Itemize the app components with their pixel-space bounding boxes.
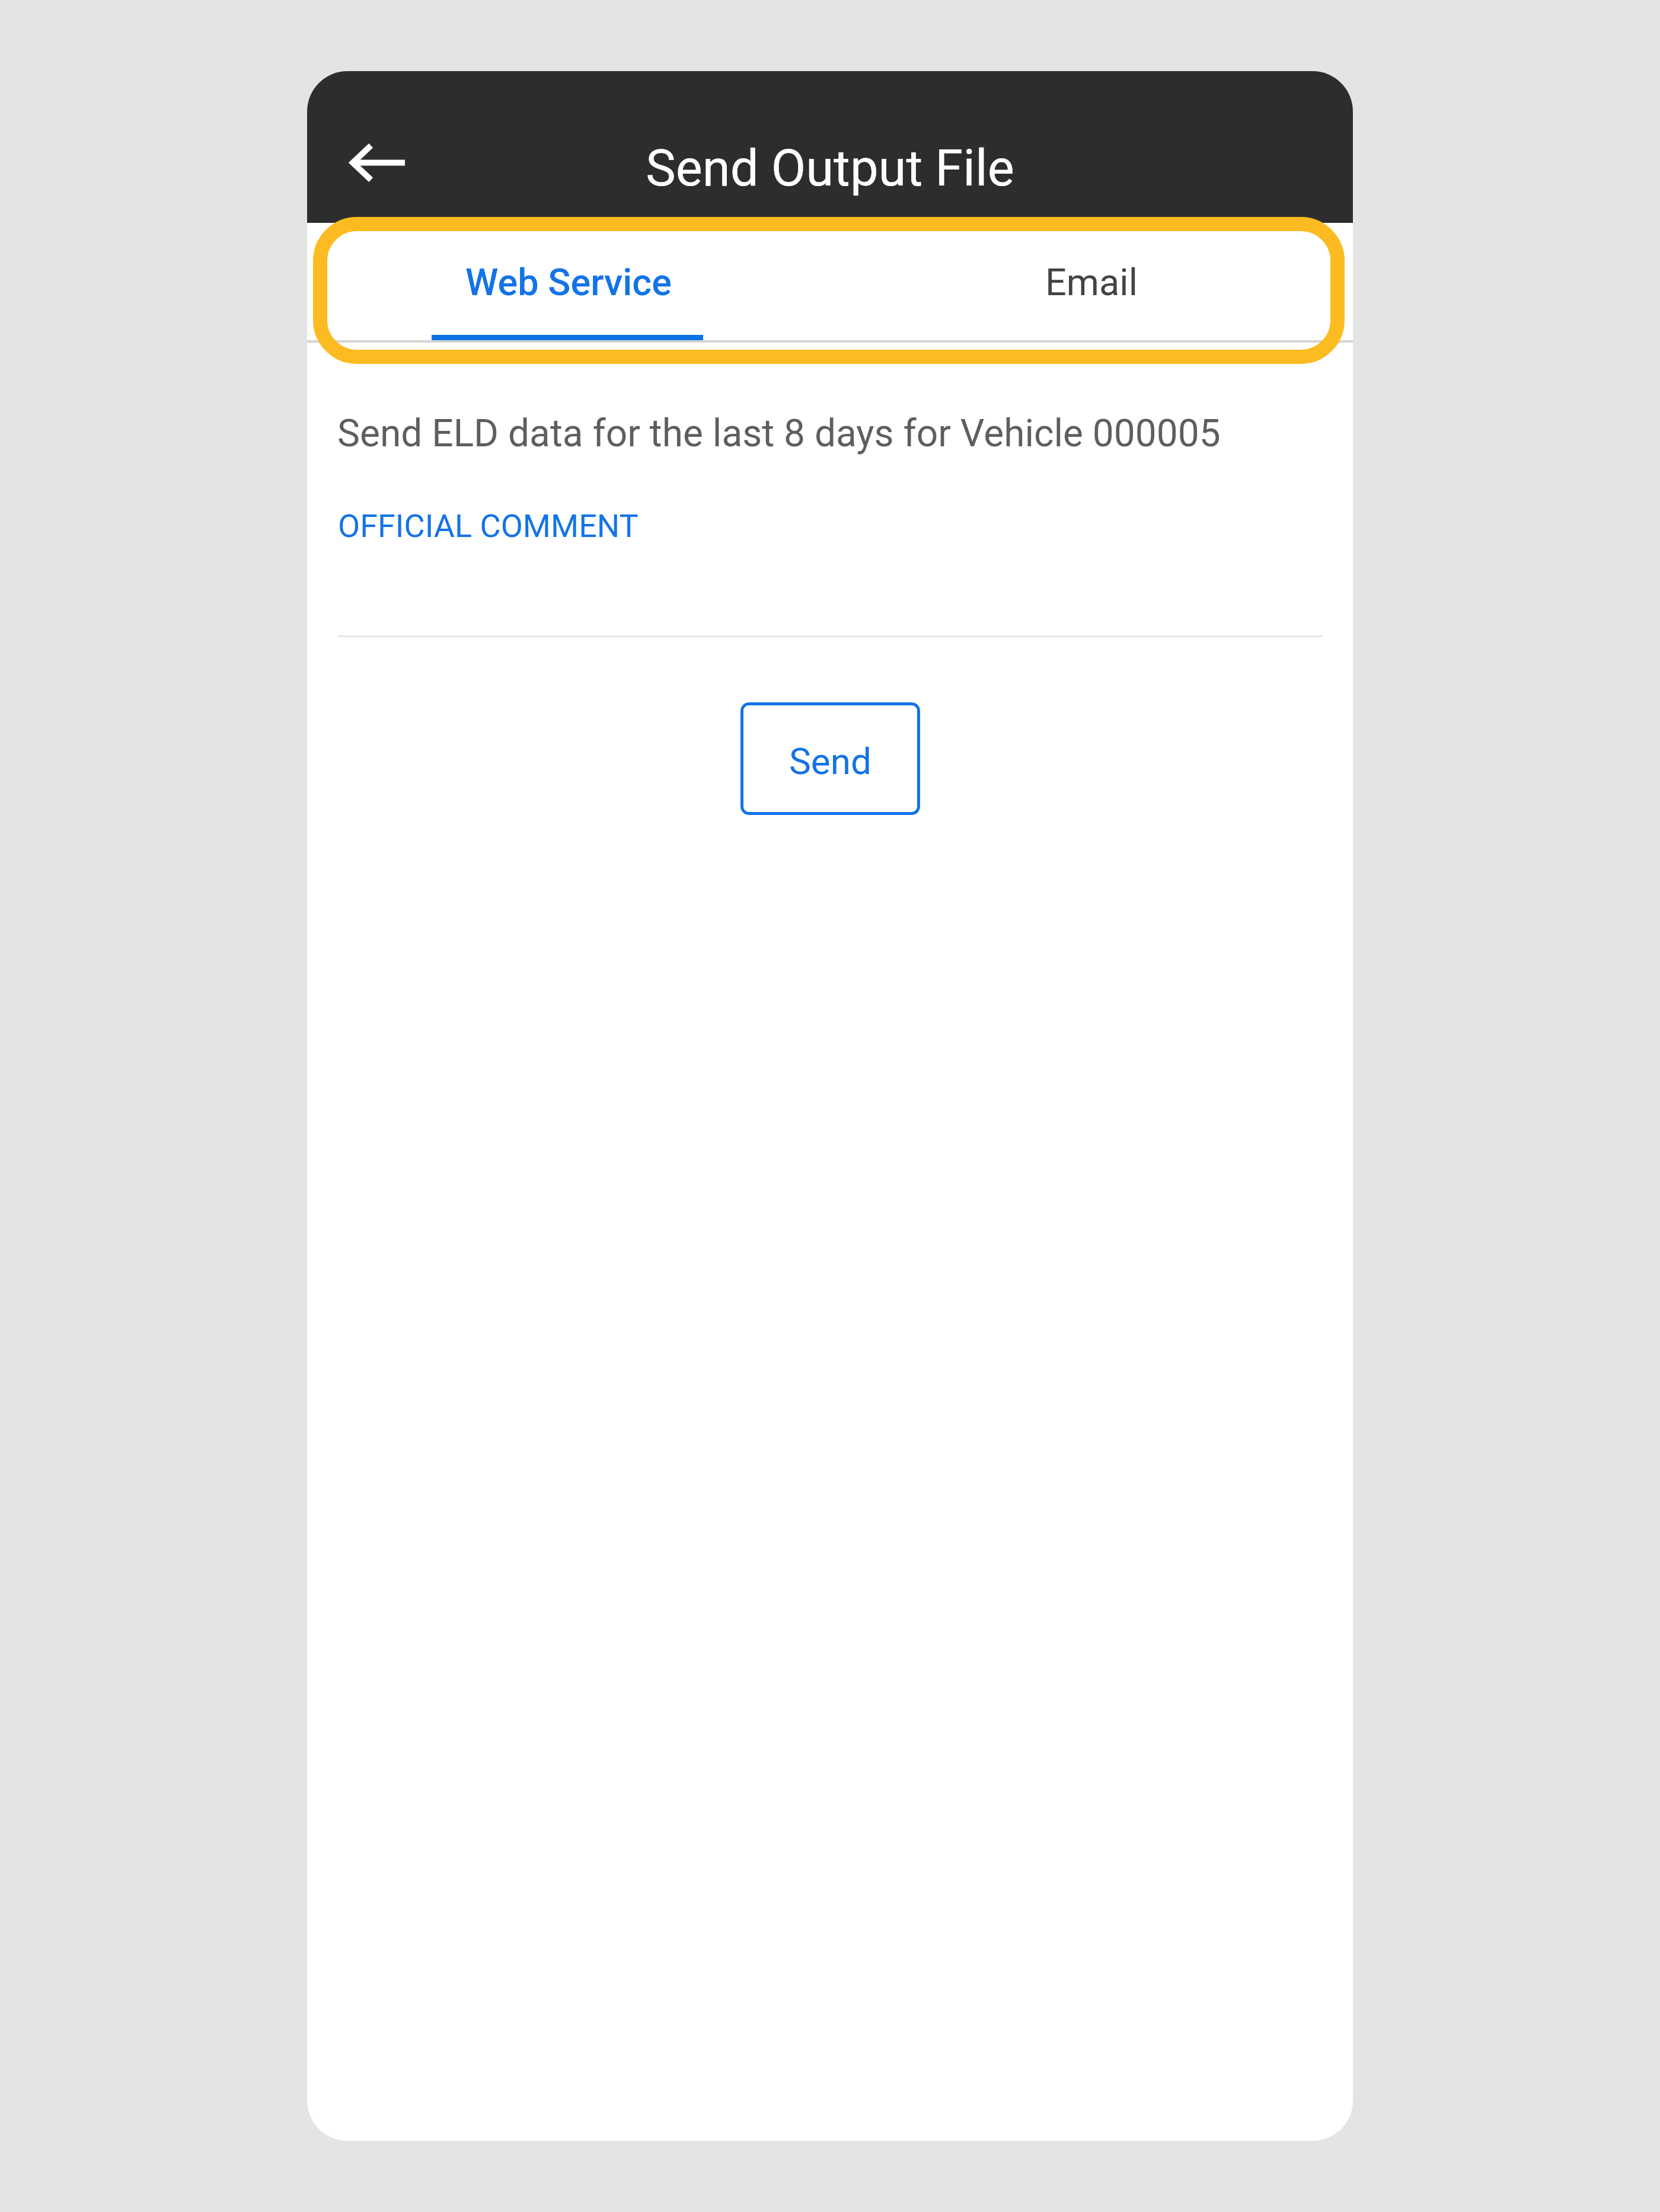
staticText: OFFICIAL COMMENT bbox=[338, 507, 639, 545]
button[interactable]: Email bbox=[830, 223, 1353, 343]
button[interactable]: OFFICIAL COMMENT bbox=[338, 501, 1323, 637]
button[interactable]: Web Service bbox=[307, 223, 830, 343]
staticText: Send ELD data for the last 8 days for Ve… bbox=[337, 411, 1221, 456]
staticText: Send bbox=[789, 740, 871, 783]
staticText: Send Output File bbox=[307, 139, 1353, 198]
button[interactable]: Back bbox=[331, 113, 432, 213]
button[interactable]: Send bbox=[740, 702, 920, 815]
staticText: Web Service bbox=[307, 261, 830, 305]
staticText: Email bbox=[830, 261, 1353, 305]
